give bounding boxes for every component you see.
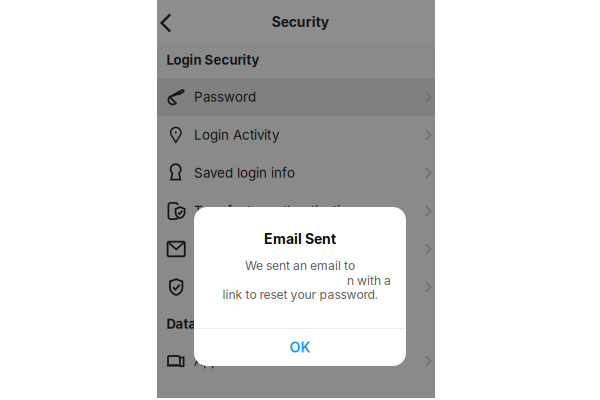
staticText: link to reset your password. bbox=[222, 287, 377, 302]
staticText: Two-factor authentication bbox=[194, 203, 356, 219]
button[interactable]: Login Activity bbox=[157, 116, 435, 154]
staticText: Security bbox=[272, 14, 329, 30]
staticText: Security Checkup bbox=[194, 279, 308, 295]
staticText: Login Security bbox=[166, 52, 259, 68]
button[interactable]: Security Checkup bbox=[157, 268, 435, 306]
button[interactable]: OK bbox=[194, 329, 406, 366]
button[interactable]: Password bbox=[157, 78, 435, 116]
button[interactable]: Two-factor authentication bbox=[157, 192, 435, 230]
staticText: Password bbox=[194, 89, 256, 105]
button[interactable]: Back bbox=[158, 0, 184, 42]
staticText: OK bbox=[289, 339, 310, 356]
staticText: Login Activity bbox=[194, 127, 279, 143]
staticText: n with a bbox=[347, 273, 391, 288]
staticText: Saved login info bbox=[194, 165, 295, 181]
staticText: We sent an email to bbox=[245, 258, 355, 273]
button[interactable]: Apps and websites bbox=[157, 342, 435, 380]
staticText: Apps and websites bbox=[194, 353, 313, 369]
button[interactable]: Email bbox=[157, 230, 435, 268]
button[interactable]: Saved login info bbox=[157, 154, 435, 192]
staticText: Email Sent bbox=[264, 230, 336, 247]
staticText: Data bbox=[166, 316, 196, 332]
